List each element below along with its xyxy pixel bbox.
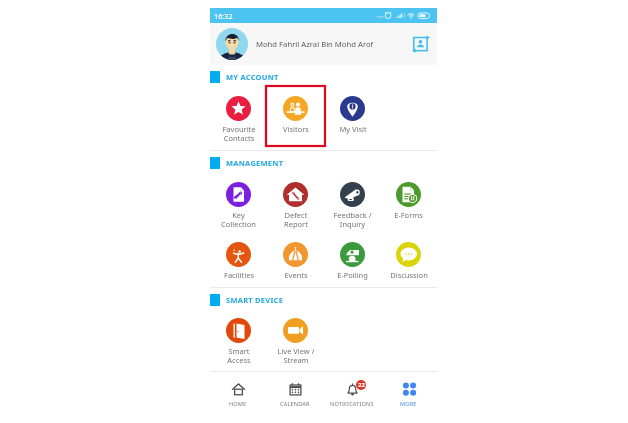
staticText: Live View / Stream [277,346,315,365]
staticText: MY ACCOUNT [226,72,279,82]
button[interactable]: Facilities [210,242,267,280]
staticText: Mohd Fahril Azral Bin Mohd Arof [256,39,374,49]
staticText: Smart Access [227,346,251,365]
staticText: MANAGEMENT [226,158,284,168]
button[interactable]: E-Forms [380,182,437,220]
button[interactable]: CALENDAR [266,372,323,411]
staticText: Events [284,270,308,280]
button[interactable]: Visitors [267,96,324,134]
staticText: Key Collection [221,210,256,229]
button[interactable]: My Visit [324,96,381,134]
staticText: SMART DEVICE [226,295,284,305]
staticText: HOME [229,400,247,408]
staticText: E-Polling [337,270,368,280]
staticText: Facilities [224,270,254,280]
staticText: Defect Report [284,210,308,229]
staticText: Discussion [390,270,428,280]
staticText: My Visit [339,124,367,134]
button[interactable]: Feedback / Inquiry [324,182,381,229]
staticText: 22 [358,381,365,389]
button[interactable]: HOME [210,372,266,411]
button[interactable]: Key Collection [210,182,267,229]
staticText: Feedback / Inquiry [333,210,372,229]
button[interactable]: E-Polling [324,242,381,280]
button[interactable]: Discussion [380,242,437,280]
button[interactable]: Switch user [410,33,432,55]
button[interactable]: 22 [323,372,380,411]
button[interactable]: Smart Access [210,318,267,365]
staticText: MORE [400,400,417,408]
button[interactable]: Events [267,242,324,280]
staticText: Favourite Contacts [222,124,256,143]
button[interactable]: MORE [380,372,437,411]
staticText: CALENDAR [280,400,310,408]
button[interactable]: Live View / Stream [267,318,324,365]
staticText: E-Forms [394,210,423,220]
button[interactable]: Favourite Contacts [210,96,267,143]
button[interactable]: Defect Report [267,182,324,229]
staticText: NOTIFICATIONS [330,400,374,408]
staticText: 16:32 [214,11,233,21]
staticText: Visitors [283,124,309,134]
